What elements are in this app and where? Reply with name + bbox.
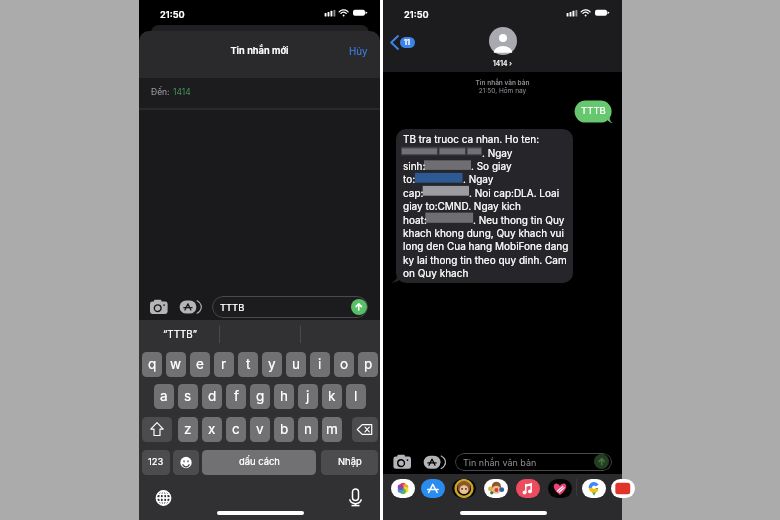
button[interactable]	[139, 78, 380, 108]
staticText: long den Cua hang MobiFone dang	[403, 240, 569, 252]
staticText: cap:	[403, 187, 424, 199]
staticText: giay to:CMND. Ngay kich	[403, 200, 521, 212]
staticText: r	[221, 356, 227, 372]
button[interactable]: y	[262, 352, 282, 377]
button[interactable]: TTTB	[575, 101, 612, 123]
staticText: Nhập	[338, 456, 362, 467]
staticText: TB tra truoc ca nhan. Ho ten:	[403, 133, 540, 145]
button[interactable]: k	[322, 384, 342, 409]
staticText: h	[280, 388, 288, 404]
button[interactable]: TTTB	[212, 296, 368, 318]
button[interactable]: Fitness	[548, 479, 572, 498]
button[interactable]: m	[322, 417, 342, 442]
staticText: sinh:	[403, 160, 426, 172]
button[interactable]: 123	[142, 450, 170, 475]
staticText: . Noi cap:DLA. Loai	[469, 187, 560, 199]
staticText: j	[306, 388, 310, 404]
button[interactable]: r	[214, 352, 234, 377]
button[interactable]: s	[178, 384, 198, 409]
button[interactable]: dấu cách	[202, 450, 316, 475]
button[interactable]: App Store	[421, 479, 445, 498]
button[interactable]: Photos	[391, 479, 415, 498]
button[interactable]: h	[274, 384, 294, 409]
staticText: c	[232, 421, 240, 437]
staticText: m	[326, 421, 338, 437]
staticText: l	[354, 388, 358, 404]
button[interactable]: Music	[516, 479, 540, 498]
button[interactable]: App Store	[422, 451, 445, 473]
staticText: q	[148, 356, 157, 372]
staticText: w	[170, 356, 182, 372]
staticText: . Ngay	[463, 173, 494, 185]
button[interactable]: p	[358, 352, 378, 377]
button[interactable]: App Store	[178, 296, 201, 318]
button[interactable]: w	[166, 352, 186, 377]
button[interactable]: q	[142, 352, 162, 377]
button[interactable]: Camera	[151, 296, 169, 317]
staticText: t	[246, 356, 251, 372]
button[interactable]: Nhập	[321, 450, 378, 475]
staticText: y	[268, 356, 276, 372]
button[interactable]: More	[611, 479, 635, 498]
staticText: i	[318, 356, 322, 372]
button[interactable]: v	[250, 417, 270, 442]
button[interactable]: Send	[351, 299, 367, 315]
button[interactable]: Emoji	[173, 450, 199, 475]
button[interactable]: u	[286, 352, 306, 377]
button[interactable]: Camera	[394, 451, 413, 472]
button[interactable]: d	[202, 384, 222, 409]
button[interactable]: n	[298, 417, 318, 442]
staticText: to:	[403, 173, 416, 185]
button[interactable]: Contact 1414	[489, 27, 517, 55]
button[interactable]: t	[238, 352, 258, 377]
staticText: . So giay	[471, 160, 512, 172]
button[interactable]: b	[274, 417, 294, 442]
button[interactable]: Memoji	[452, 479, 476, 498]
staticText: k	[328, 388, 336, 404]
button[interactable]: Hủy	[343, 42, 373, 62]
button[interactable]: c	[226, 417, 246, 442]
button[interactable]: o	[334, 352, 354, 377]
staticText: s	[184, 388, 192, 404]
button[interactable]: Stickers	[484, 479, 508, 498]
button[interactable]: a	[154, 384, 174, 409]
staticText: 1414	[173, 87, 191, 97]
staticText: Hủy	[349, 46, 368, 58]
button[interactable]: g	[250, 384, 270, 409]
staticText: p	[364, 356, 373, 372]
button[interactable]: j	[298, 384, 318, 409]
staticText: 21:50	[160, 9, 185, 20]
staticText: Tin nhắn văn bản	[463, 457, 537, 468]
staticText: 1414 ›	[383, 59, 622, 67]
button[interactable]: Tin nhắn văn bản	[455, 453, 612, 471]
button[interactable]: “TTTB”	[150, 326, 210, 344]
button[interactable]: e	[190, 352, 210, 377]
staticText: Đến:	[151, 87, 170, 97]
staticText: khach khong dung, Quy khach vui	[403, 227, 564, 239]
button[interactable]: z	[178, 417, 198, 442]
button[interactable]: x	[202, 417, 222, 442]
staticText: on Quy khach	[403, 267, 469, 279]
staticText: 123	[148, 456, 164, 467]
button[interactable]: Change keyboard	[153, 488, 174, 508]
button[interactable]: Dictation	[345, 488, 366, 508]
staticText: 11	[404, 38, 411, 47]
staticText: Tin nhắn mới	[139, 45, 380, 56]
button[interactable]: Back	[390, 34, 418, 51]
button[interactable]: i	[310, 352, 330, 377]
button[interactable]: f	[226, 384, 246, 409]
staticText: u	[292, 356, 300, 372]
button[interactable]: Shift	[142, 417, 172, 442]
button[interactable]: Maps	[582, 479, 606, 498]
button[interactable]: l	[346, 384, 366, 409]
staticText: g	[256, 388, 265, 404]
staticText: . Neu thong tin Quy	[473, 214, 565, 226]
staticText: d	[208, 388, 217, 404]
button[interactable]: Backspace	[352, 417, 378, 442]
staticText: dấu cách	[239, 456, 280, 467]
staticText: hoat:	[403, 214, 427, 226]
staticText: e	[196, 356, 204, 372]
staticText: v	[256, 421, 264, 437]
button[interactable]: Send	[594, 454, 609, 469]
button[interactable]	[396, 129, 573, 283]
